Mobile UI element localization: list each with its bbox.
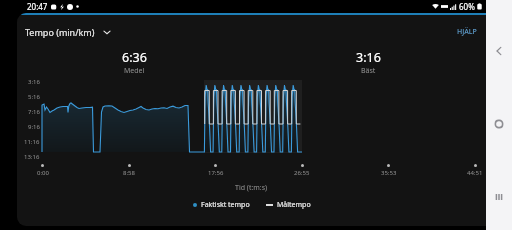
staticText: 3:16 xyxy=(28,78,40,86)
button[interactable]: Back xyxy=(486,38,512,64)
staticText: Tempo (min/km) xyxy=(25,26,95,38)
staticText: 35:53 xyxy=(381,169,397,177)
staticText: 6:36 xyxy=(122,49,147,66)
staticText: 9:16 xyxy=(28,123,40,131)
staticText: 7:16 xyxy=(28,108,40,116)
button[interactable]: Home xyxy=(486,111,512,137)
staticText: Tid (t:m:s) xyxy=(235,183,268,193)
staticText: 44:51 xyxy=(467,169,483,177)
staticText: Måltempo xyxy=(277,200,311,210)
staticText: 3:16 xyxy=(356,49,381,66)
button[interactable]: Recent apps xyxy=(486,184,512,210)
staticText: 5:16 xyxy=(28,93,40,101)
staticText: Faktiskt tempo xyxy=(201,200,250,210)
staticText: 0:00 xyxy=(37,169,49,177)
button[interactable]: HJÄLP xyxy=(448,23,486,41)
staticText: HJÄLP xyxy=(457,27,477,37)
staticText: 8:58 xyxy=(123,169,135,177)
staticText: 60% xyxy=(459,1,475,12)
button[interactable]: Måltempo xyxy=(266,200,311,210)
staticText: Medel xyxy=(124,66,145,76)
staticText: 11:16 xyxy=(24,138,40,146)
button[interactable]: Faktiskt tempo xyxy=(193,200,250,210)
staticText: 26:55 xyxy=(294,169,310,177)
button[interactable]: Tempo (min/km) xyxy=(17,26,117,38)
staticText: 13:16 xyxy=(24,153,40,161)
staticText: Bäst xyxy=(361,66,376,76)
staticText: 20:47 xyxy=(27,1,48,12)
staticText: 17:56 xyxy=(208,169,224,177)
